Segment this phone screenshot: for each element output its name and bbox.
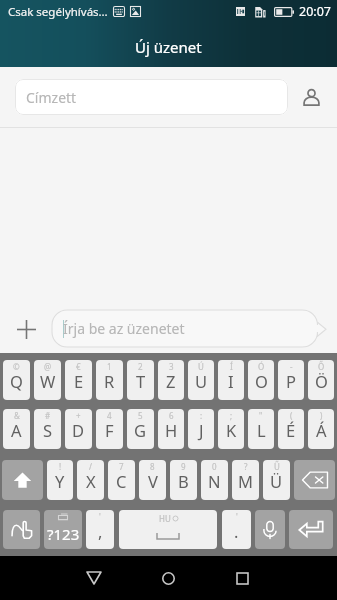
button[interactable]: Melléklet hozzáadása <box>8 311 44 347</box>
button[interactable]: ) <box>308 409 334 449</box>
staticText: J <box>199 419 204 441</box>
staticText: ' <box>99 511 101 522</box>
staticText: 9 <box>181 461 186 472</box>
staticText: 1 <box>107 361 112 372</box>
button[interactable]: 2 <box>127 360 154 400</box>
button[interactable]: @ <box>34 360 61 400</box>
button[interactable]: Kezdőképernyő <box>154 556 182 600</box>
button[interactable]: Ű <box>263 460 290 500</box>
staticText: P <box>286 370 296 392</box>
button[interactable]: Shift <box>2 460 43 500</box>
staticText: Q <box>10 370 23 392</box>
button[interactable]: ? <box>232 460 259 500</box>
button[interactable]: Írja be az üzenetet <box>52 310 326 347</box>
staticText: ; <box>230 410 233 421</box>
staticText: U <box>195 370 208 392</box>
staticText: M <box>238 470 253 492</box>
staticText: X <box>86 470 96 492</box>
button[interactable]: Ő <box>308 360 334 400</box>
staticText: ( <box>290 410 293 421</box>
button[interactable]: 6 <box>158 409 184 449</box>
staticText: C <box>116 470 127 492</box>
button[interactable]: & <box>3 409 30 449</box>
staticText: 4 <box>107 410 112 421</box>
button[interactable]: 5 <box>127 409 154 449</box>
button[interactable]: Törlés <box>294 460 335 500</box>
staticText: A <box>11 419 22 441</box>
button[interactable]: ( <box>278 409 304 449</box>
staticText: Címzett <box>26 88 77 107</box>
button[interactable]: : <box>188 409 214 449</box>
staticText: ' <box>236 511 238 522</box>
staticText: Ü <box>270 470 283 492</box>
staticText: ! <box>59 461 62 472</box>
staticText: HU <box>159 513 171 524</box>
button[interactable]: ' <box>222 510 251 549</box>
button[interactable]: Kézírás <box>3 510 40 549</box>
staticText: Új üzenet <box>135 37 202 57</box>
staticText: ? <box>244 461 248 472</box>
staticText: 20:07 <box>299 3 331 20</box>
staticText: W <box>40 370 56 392</box>
button[interactable]: Vissza <box>80 556 108 600</box>
button[interactable]: Névjegyek <box>295 81 327 113</box>
button[interactable]: 4 <box>96 409 123 449</box>
staticText: 5 <box>138 410 143 421</box>
staticText: R <box>104 370 115 392</box>
button[interactable]: + <box>65 409 92 449</box>
button[interactable]: Címzett <box>15 79 288 115</box>
button[interactable]: - <box>278 360 304 400</box>
button[interactable]: 1 <box>96 360 123 400</box>
button[interactable]: Számok és jelek <box>44 510 82 549</box>
staticText: 3 <box>169 361 174 372</box>
button[interactable]: 9 <box>170 460 197 500</box>
staticText: ?123 <box>47 524 80 544</box>
button[interactable]: / <box>77 460 104 500</box>
staticText: € <box>76 361 81 372</box>
staticText: H <box>165 419 178 441</box>
button[interactable]: " <box>248 409 274 449</box>
button[interactable]: Ú <box>188 360 214 400</box>
staticText: K <box>226 419 237 441</box>
staticText: Írja be az üzenetet <box>63 319 185 338</box>
button[interactable]: 3 <box>158 360 184 400</box>
staticText: + <box>76 410 81 421</box>
staticText: B <box>178 470 189 492</box>
staticText: & <box>14 410 20 421</box>
button[interactable]: 7 <box>108 460 135 500</box>
staticText: . <box>234 520 239 542</box>
staticText: Y <box>55 470 65 492</box>
button[interactable]: Í <box>218 360 244 400</box>
button[interactable]: ! <box>47 460 73 500</box>
staticText: # <box>45 410 51 421</box>
button[interactable]: Hangbevitel <box>255 510 285 549</box>
staticText: D <box>72 419 85 441</box>
button[interactable]: ' <box>86 510 114 549</box>
button[interactable]: € <box>65 360 92 400</box>
staticText: Ő <box>318 361 325 372</box>
button[interactable]: 0 <box>201 460 228 500</box>
button[interactable]: Ó <box>248 360 274 400</box>
staticText: ) <box>320 410 323 421</box>
button[interactable]: 8 <box>139 460 166 500</box>
button[interactable]: Enter <box>289 510 333 549</box>
button[interactable]: © <box>3 360 30 400</box>
button[interactable]: Áttekintés <box>228 556 256 600</box>
staticText: É <box>286 419 296 441</box>
button[interactable]: ; <box>218 409 244 449</box>
staticText: N <box>208 470 221 492</box>
staticText: Csak segélyhívás… <box>8 4 108 20</box>
staticText: Á <box>316 419 327 441</box>
staticText: 8 <box>150 461 155 472</box>
staticText: G <box>134 419 147 441</box>
staticText: " <box>259 410 263 421</box>
staticText: @ <box>44 361 52 372</box>
button[interactable]: # <box>34 409 61 449</box>
staticText: 7 <box>119 461 124 472</box>
staticText: Ó <box>258 361 265 372</box>
staticText: T <box>136 370 146 392</box>
staticText: V <box>148 470 158 492</box>
staticText: I <box>228 370 234 392</box>
staticText: , <box>98 520 103 542</box>
button[interactable]: Szóköz <box>119 510 217 549</box>
